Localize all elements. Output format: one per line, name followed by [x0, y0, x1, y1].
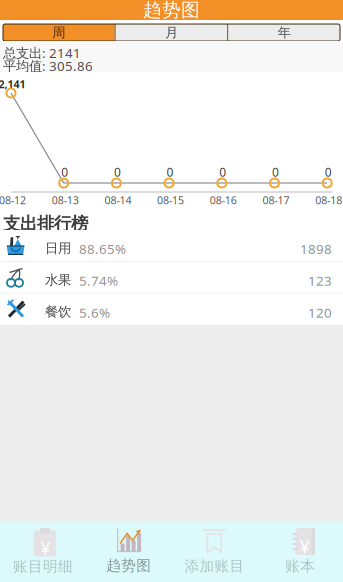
staticText: 总支出: 2141 — [3, 44, 81, 62]
staticText: 0 — [219, 164, 226, 180]
staticText: 月 — [165, 24, 178, 41]
staticText: 88.65% — [79, 240, 126, 258]
staticText: 0 — [167, 164, 174, 180]
button[interactable]: 月 — [116, 24, 227, 41]
staticText: 趋势图 — [106, 556, 151, 574]
staticText: 0 — [114, 164, 121, 180]
staticText: 08-14 — [104, 193, 131, 207]
staticText: 08-12 — [0, 193, 26, 207]
staticText: 08-13 — [52, 193, 79, 207]
staticText: 账本 — [285, 557, 315, 575]
staticText: 添加账目 — [184, 557, 244, 575]
staticText: 123 — [308, 272, 332, 289]
staticText: 08-18 — [315, 193, 342, 207]
staticText: 0 — [272, 164, 279, 180]
staticText: 2,141 — [0, 77, 25, 91]
staticText: 5.74% — [79, 272, 118, 289]
button[interactable]: 餐饮 — [0, 294, 343, 325]
button[interactable]: 添加账目 — [171, 522, 257, 582]
staticText: 08-16 — [210, 193, 237, 207]
staticText: 趋势图 — [143, 0, 200, 21]
staticText: 08-17 — [262, 193, 289, 207]
button[interactable]: 日用 — [0, 230, 343, 261]
staticText: 08-15 — [157, 193, 184, 207]
button[interactable]: 水果 — [0, 262, 343, 293]
button[interactable]: ¥ — [0, 522, 86, 582]
staticText: ¥ — [40, 536, 50, 559]
staticText: 水果 — [45, 272, 71, 288]
staticText: 日用 — [45, 240, 71, 256]
staticText: 120 — [308, 304, 332, 321]
button[interactable]: 周 — [3, 24, 115, 41]
staticText: 平均值: 305.86 — [3, 57, 93, 75]
staticText: 5.6% — [79, 304, 110, 321]
staticText: 餐饮 — [45, 304, 71, 320]
staticText: 年 — [278, 24, 291, 41]
button[interactable]: 趋势图 — [86, 522, 172, 582]
staticText: 0 — [61, 164, 68, 180]
staticText: 0 — [325, 164, 332, 180]
staticText: ¥ — [300, 535, 310, 558]
staticText: 支出排行榜 — [3, 213, 88, 234]
button[interactable]: 年 — [228, 24, 340, 41]
button[interactable]: ¥ — [257, 522, 343, 582]
staticText: 账目明细 — [13, 557, 73, 575]
staticText: 1898 — [300, 240, 332, 258]
staticText: 周 — [52, 24, 65, 41]
